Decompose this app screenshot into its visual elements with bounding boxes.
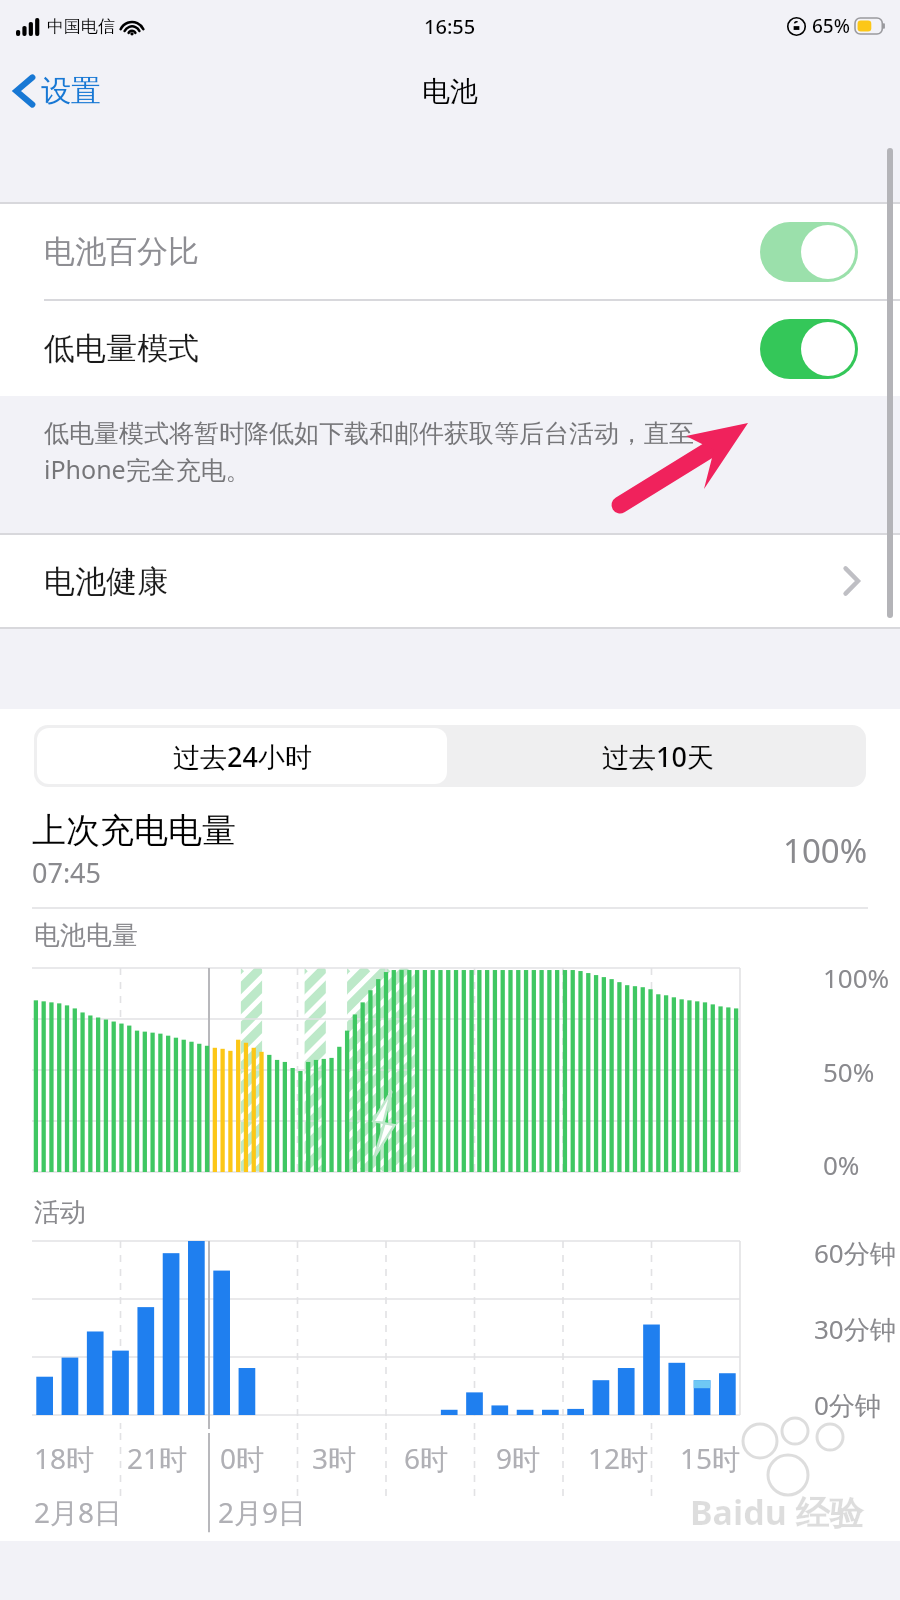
staticText: 低电量模式将暂时降低如下载和邮件获取等后台活动，直至 iPhone完全充电。 (44, 418, 694, 487)
staticText: 18时 (34, 1439, 95, 1477)
staticText: 50% (823, 1054, 875, 1089)
staticText: 3时 (312, 1439, 357, 1477)
staticText: 07:45 (32, 854, 102, 891)
staticText: 设置 (41, 72, 101, 110)
staticText: 21时 (127, 1439, 188, 1477)
staticText: 0时 (220, 1439, 265, 1477)
staticText: 0分钟 (814, 1387, 881, 1423)
staticText: 活动 (34, 1196, 86, 1229)
button[interactable] (760, 222, 858, 282)
staticText: 65% (812, 13, 850, 39)
button[interactable]: 设置 (0, 64, 115, 118)
staticText: 低电量模式 (44, 329, 199, 368)
staticText: 60分钟 (814, 1235, 896, 1271)
staticText: 30分钟 (814, 1311, 896, 1347)
other: 展开 (843, 566, 860, 596)
staticText: 电池百分比 (44, 232, 199, 271)
staticText: Baidu 经验 (690, 1489, 864, 1535)
staticText: 电池电量 (34, 919, 138, 952)
staticText: 0% (823, 1147, 860, 1182)
button[interactable]: 电池健康 (0, 535, 900, 627)
staticText: 100% (783, 828, 868, 873)
staticText: 2月9日 (218, 1493, 307, 1531)
staticText: 上次充电电量 (32, 809, 236, 852)
staticText: 100% (823, 960, 890, 995)
staticText: 2月8日 (34, 1493, 123, 1531)
staticText: 9时 (496, 1439, 541, 1477)
staticText: 6时 (404, 1439, 449, 1477)
staticText: 电池 (422, 74, 478, 109)
staticText: 过去24小时 (173, 738, 312, 775)
staticText: 中国电信 (47, 16, 115, 37)
button[interactable]: 电池百分比 (0, 204, 900, 299)
staticText: 16:55 (424, 13, 476, 40)
button[interactable]: 过去24小时 (37, 728, 447, 784)
button[interactable] (760, 319, 858, 379)
staticText: 15时 (680, 1439, 741, 1477)
staticText: 12时 (588, 1439, 649, 1477)
button[interactable]: 过去10天 (450, 725, 866, 787)
staticText: 电池健康 (44, 562, 168, 601)
button[interactable]: 低电量模式 (0, 301, 900, 396)
staticText: 过去10天 (602, 738, 714, 775)
